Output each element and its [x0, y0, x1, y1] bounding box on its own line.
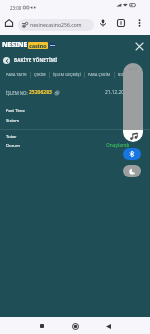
button[interactable]: Home: [2, 16, 15, 29]
staticText: İŞLEM NO:: [6, 90, 28, 96]
button[interactable]: Tabs: [115, 17, 127, 29]
staticText: PARA ÇEKİM: [88, 72, 111, 77]
staticText: nesinecasino256.com: [30, 22, 82, 29]
button[interactable]: Copy: [54, 90, 60, 96]
button[interactable]: ÇEKİM: [31, 72, 49, 77]
staticText: casino: [29, 42, 47, 49]
button[interactable]: Home: [67, 318, 83, 334]
button[interactable]: Close: [132, 39, 146, 53]
staticText: ÇEKİM: [34, 72, 46, 77]
button[interactable]: PARA YATIR: [3, 72, 30, 77]
staticText: BAKİYE YÖNETİMİ: [14, 57, 58, 63]
staticText: 25206283: [29, 89, 52, 96]
staticText: İŞLEM GEÇMİŞİ: [53, 72, 81, 77]
staticText: Sistem: [6, 118, 20, 124]
button[interactable]: Do not disturb: [123, 165, 141, 177]
button[interactable]: Voice search: [97, 17, 109, 29]
button[interactable]: İŞLEM GEÇMİŞİ: [50, 72, 84, 77]
button[interactable]: Back: [100, 318, 116, 334]
staticText: Durum: [6, 143, 20, 149]
button[interactable]: Media volume: [123, 130, 143, 142]
button[interactable]: PARA ÇEKİM: [85, 72, 114, 77]
button[interactable]: More options: [133, 17, 145, 29]
staticText: BON: [118, 72, 127, 77]
button[interactable]: BON: [115, 72, 130, 77]
staticText: PARA YATIR: [6, 72, 27, 77]
button[interactable]: BAKİYE YÖNETİMİ: [3, 54, 150, 66]
button[interactable]: Recents: [34, 318, 50, 334]
staticText: 21.12.2024: [105, 89, 130, 96]
button[interactable]: nesinecasino256.com: [18, 19, 94, 31]
staticText: Fast Time: [6, 108, 25, 114]
button[interactable]: Bluetooth: [123, 148, 141, 160]
staticText: Onaylandı: [106, 142, 130, 149]
staticText: NESINE: [2, 40, 27, 50]
staticText: 23:00: [10, 5, 22, 11]
staticText: Tutar: [6, 134, 17, 140]
